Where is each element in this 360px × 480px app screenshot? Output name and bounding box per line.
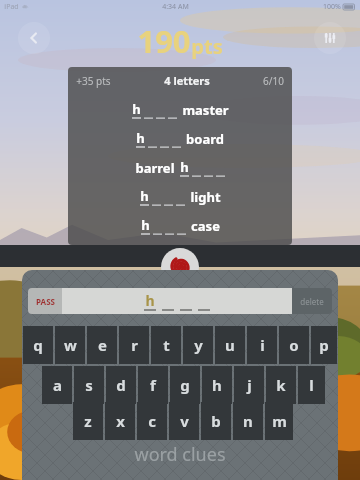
staticText: b <box>211 411 221 431</box>
staticText: pts <box>191 33 223 60</box>
button[interactable]: w <box>55 326 85 364</box>
staticText: h <box>136 129 145 147</box>
staticText: u <box>225 335 235 355</box>
button[interactable]: q <box>23 326 53 364</box>
button[interactable]: i <box>247 326 277 364</box>
staticText: word clues <box>134 442 226 467</box>
button[interactable]: j <box>234 366 264 404</box>
staticText: q <box>33 335 43 355</box>
staticText: l <box>309 375 314 395</box>
staticText: o <box>289 335 299 355</box>
button[interactable]: s <box>74 366 104 404</box>
staticText: m <box>272 411 287 431</box>
staticText: c <box>148 411 156 431</box>
button[interactable]: z <box>73 402 103 440</box>
button[interactable]: r <box>119 326 149 364</box>
button[interactable]: e <box>87 326 117 364</box>
staticText: h <box>132 100 141 118</box>
staticText: barrel <box>135 159 175 177</box>
staticText: v <box>180 411 189 431</box>
staticText: w <box>64 335 77 355</box>
staticText: r <box>131 335 138 355</box>
staticText: delete <box>300 296 324 307</box>
staticText: a <box>53 375 62 395</box>
button[interactable]: u <box>215 326 245 364</box>
staticText: z <box>84 411 92 431</box>
staticText: y <box>194 335 203 355</box>
staticText: 4:34 AM <box>162 2 189 12</box>
staticText: board <box>186 130 224 148</box>
button[interactable]: Settings <box>314 22 346 54</box>
button[interactable]: y <box>183 326 213 364</box>
staticText: f <box>150 375 156 395</box>
staticText: PASS <box>36 296 55 307</box>
staticText: g <box>180 375 190 395</box>
staticText: s <box>85 375 93 395</box>
staticText: e <box>98 335 107 355</box>
button[interactable]: barrel <box>68 153 292 182</box>
button[interactable]: f <box>138 366 168 404</box>
button[interactable]: t <box>151 326 181 364</box>
staticText: p <box>319 335 329 355</box>
staticText: h <box>140 187 149 205</box>
staticText: h <box>141 216 150 234</box>
staticText: x <box>116 411 125 431</box>
button[interactable]: p <box>311 326 337 364</box>
staticText: light <box>190 188 221 206</box>
button[interactable]: x <box>105 402 135 440</box>
button[interactable]: m <box>265 402 293 440</box>
staticText: d <box>116 375 126 395</box>
button[interactable]: Back <box>18 22 50 54</box>
button[interactable]: h <box>68 182 292 211</box>
staticText: h <box>180 158 189 176</box>
button[interactable]: b <box>201 402 231 440</box>
staticText: +35 pts <box>76 74 111 88</box>
staticText: t <box>163 335 170 355</box>
button[interactable]: c <box>137 402 167 440</box>
button[interactable]: g <box>170 366 200 404</box>
staticText: 4 letters <box>164 73 210 88</box>
staticText: iPad <box>4 2 19 12</box>
staticText: case <box>191 217 220 235</box>
staticText: k <box>276 375 286 395</box>
button[interactable]: o <box>279 326 309 364</box>
button[interactable]: Shuffle <box>161 248 199 286</box>
staticText: 190 <box>137 20 191 62</box>
button[interactable]: a <box>42 366 72 404</box>
button[interactable]: Delete <box>292 288 332 314</box>
staticText: n <box>243 411 253 431</box>
staticText: 100% <box>323 2 341 12</box>
button[interactable]: h <box>68 211 292 240</box>
button[interactable]: v <box>169 402 199 440</box>
button[interactable]: k <box>266 366 296 404</box>
staticText: h <box>212 375 222 395</box>
button[interactable]: n <box>233 402 263 440</box>
staticText: j <box>247 375 252 395</box>
staticText: master <box>182 101 229 119</box>
button[interactable]: h <box>202 366 232 404</box>
button[interactable]: l <box>298 366 325 404</box>
button[interactable]: d <box>106 366 136 404</box>
staticText: h <box>145 291 155 310</box>
button[interactable]: PASS <box>28 288 62 314</box>
button[interactable]: h <box>68 95 292 124</box>
button[interactable]: h <box>68 124 292 153</box>
staticText: i <box>260 335 265 355</box>
staticText: 6/10 <box>263 74 284 88</box>
